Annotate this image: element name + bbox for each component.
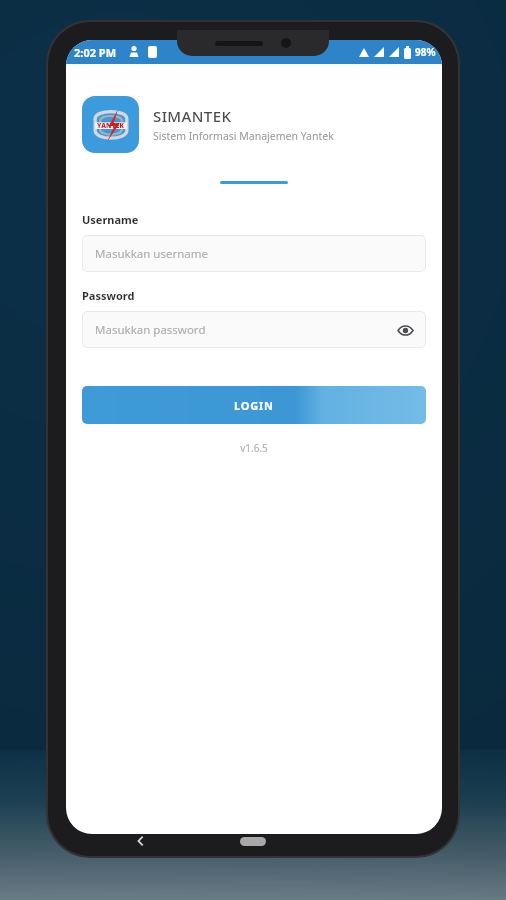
button[interactable]: Masukkan username — [82, 235, 426, 272]
button[interactable]: Show password — [395, 320, 415, 340]
staticText: v1.6.5 — [240, 441, 268, 455]
staticText: Sistem Informasi Manajemen Yantek — [153, 129, 334, 143]
staticText: Masukkan password — [95, 322, 206, 338]
button[interactable]: LOGIN — [82, 386, 426, 424]
staticText: YANTEK — [97, 121, 125, 130]
staticText: 2:02 PM — [74, 45, 117, 60]
staticText: LOGIN — [234, 398, 274, 413]
button[interactable]: Back — [134, 834, 148, 848]
staticText: Password — [82, 288, 135, 303]
staticText: 98% — [415, 45, 436, 59]
button[interactable]: Masukkan password — [82, 311, 426, 348]
button[interactable]: YANTEK — [82, 96, 139, 153]
staticText: Username — [82, 212, 139, 227]
staticText: Masukkan username — [95, 246, 208, 262]
staticText: SIMANTEK — [153, 106, 232, 126]
button[interactable]: Home — [240, 837, 266, 846]
